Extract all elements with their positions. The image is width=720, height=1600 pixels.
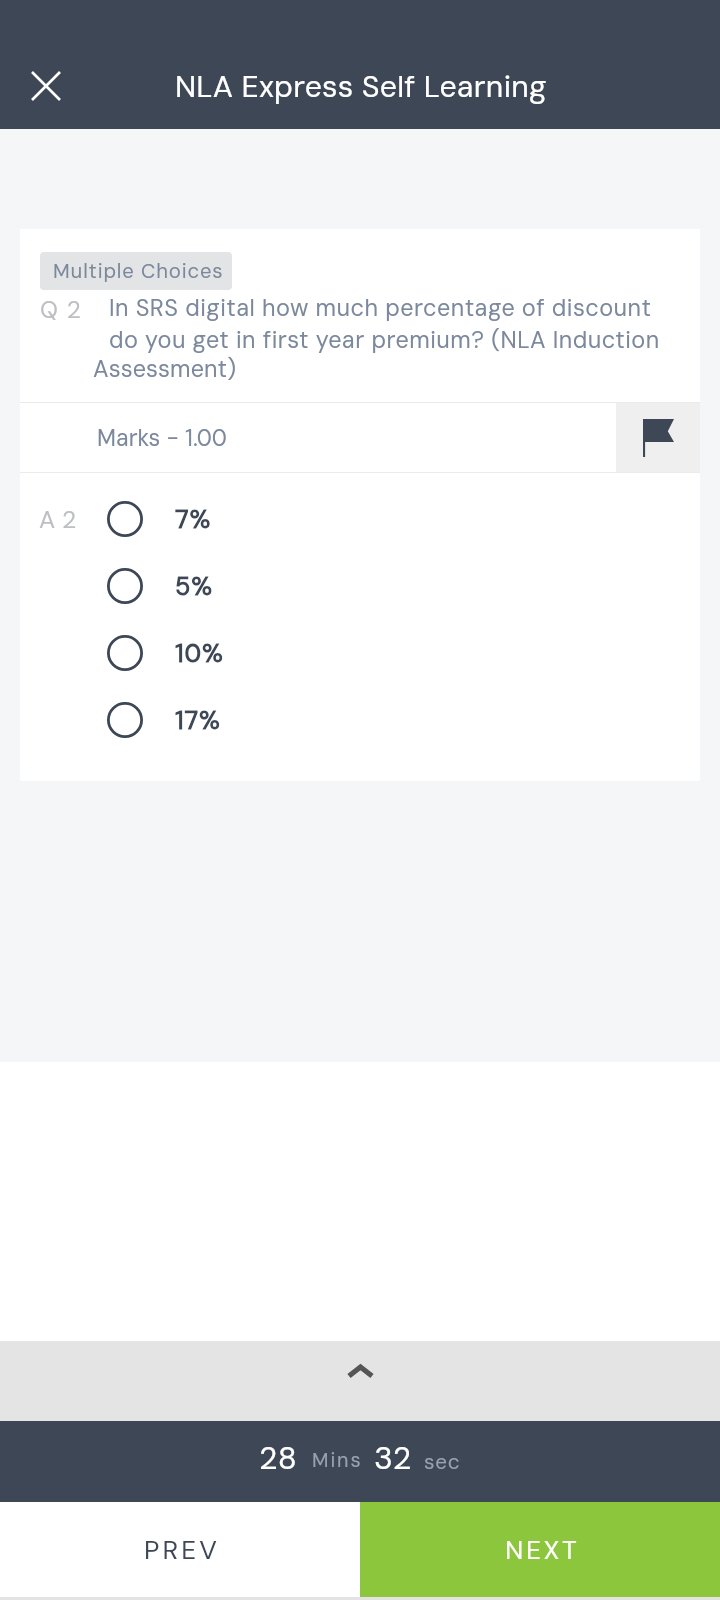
button[interactable]: Close: [13, 53, 78, 118]
staticText: In SRS digital how much percentage of di…: [109, 293, 671, 355]
staticText: NEXT: [505, 1533, 580, 1567]
staticText: 5%: [175, 570, 213, 603]
staticText: Marks - 1.00: [97, 423, 227, 453]
staticText: Multiple Choices: [53, 258, 224, 284]
staticText: NLA Express Self Learning: [175, 67, 547, 107]
staticText: sec: [424, 1448, 461, 1475]
button[interactable]: A 2: [20, 485, 700, 552]
button[interactable]: 5%: [20, 552, 700, 619]
staticText: 7%: [175, 503, 212, 536]
staticText: 32: [374, 1438, 412, 1479]
button[interactable]: PREV: [0, 1502, 360, 1597]
button[interactable]: 17%: [20, 686, 700, 753]
staticText: Assessment): [93, 354, 237, 385]
staticText: PREV: [144, 1533, 221, 1567]
staticText: Mins: [312, 1447, 363, 1473]
button[interactable]: Multiple Choices: [40, 252, 232, 290]
button[interactable]: NEXT: [360, 1502, 720, 1597]
staticText: 10%: [175, 637, 224, 670]
button[interactable]: Flag this question: [616, 403, 700, 472]
staticText: A 2: [39, 504, 77, 536]
staticText: 17%: [175, 704, 221, 737]
staticText: Q 2: [40, 294, 82, 325]
button[interactable]: Expand question palette: [0, 1341, 720, 1421]
button[interactable]: 10%: [20, 619, 700, 686]
staticText: 28: [259, 1438, 298, 1479]
